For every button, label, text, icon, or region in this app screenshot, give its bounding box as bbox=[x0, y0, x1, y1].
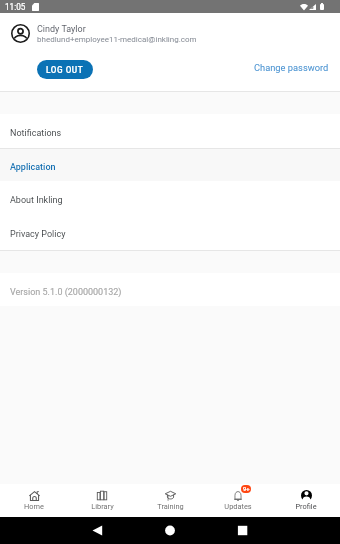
button[interactable]: Back bbox=[88, 517, 108, 544]
staticText: Change password bbox=[254, 62, 329, 73]
staticText: Privacy Policy bbox=[10, 229, 66, 240]
button[interactable]: About Inkling bbox=[0, 181, 340, 214]
button[interactable]: LOG OUT bbox=[37, 60, 93, 79]
staticText: bhedlund+employee11-medical@inkling.com bbox=[37, 35, 197, 44]
button[interactable]: Training bbox=[136, 484, 204, 517]
staticText: LOG OUT bbox=[46, 65, 84, 75]
button[interactable]: Notifications bbox=[0, 114, 340, 147]
button[interactable]: Profile bbox=[272, 484, 340, 517]
staticText: Updates bbox=[224, 502, 252, 511]
button[interactable]: Privacy Policy bbox=[0, 215, 340, 248]
button[interactable]: Home bbox=[160, 517, 180, 544]
staticText: Cindy Taylor bbox=[37, 24, 86, 35]
staticText: Home bbox=[24, 502, 44, 511]
button[interactable]: 9+ bbox=[204, 484, 272, 517]
button[interactable]: Library bbox=[68, 484, 136, 517]
staticText: 11:05 bbox=[5, 2, 26, 12]
button[interactable]: Recent apps bbox=[232, 517, 254, 544]
staticText: 9+ bbox=[243, 486, 250, 493]
staticText: Notifications bbox=[10, 128, 62, 139]
staticText: Training bbox=[157, 502, 184, 511]
button[interactable]: Home bbox=[0, 484, 68, 517]
button[interactable]: Application bbox=[0, 148, 340, 181]
button[interactable]: Change password bbox=[250, 58, 333, 77]
staticText: Application bbox=[10, 162, 56, 173]
staticText: Profile bbox=[295, 502, 317, 511]
staticText: About Inkling bbox=[10, 195, 63, 206]
staticText: Library bbox=[91, 502, 114, 511]
staticText: Version 5.1.0 (2000000132) bbox=[10, 287, 122, 298]
